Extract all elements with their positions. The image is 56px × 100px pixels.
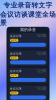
staticText: 12:30 xyxy=(37,87,46,90)
staticText: 会议记录 xyxy=(10,69,22,73)
staticText: 12:30 xyxy=(37,34,46,38)
staticText: 转写 xyxy=(11,91,17,95)
staticText: 转写 xyxy=(11,56,17,59)
staticText: 转写 xyxy=(11,74,17,77)
staticText: 我的录音 xyxy=(20,27,36,32)
staticText: 会议记录 xyxy=(10,87,22,90)
staticText: 会议访谈课堂全场景 xyxy=(0,10,56,27)
staticText: 会议记录 xyxy=(10,52,22,55)
staticText: 会议记录 xyxy=(10,34,22,38)
staticText: 转写 xyxy=(11,39,17,42)
staticText: 12:30 xyxy=(37,69,46,73)
staticText: 专业录音转文字 xyxy=(3,1,52,9)
staticText: 12:30 xyxy=(37,52,46,55)
